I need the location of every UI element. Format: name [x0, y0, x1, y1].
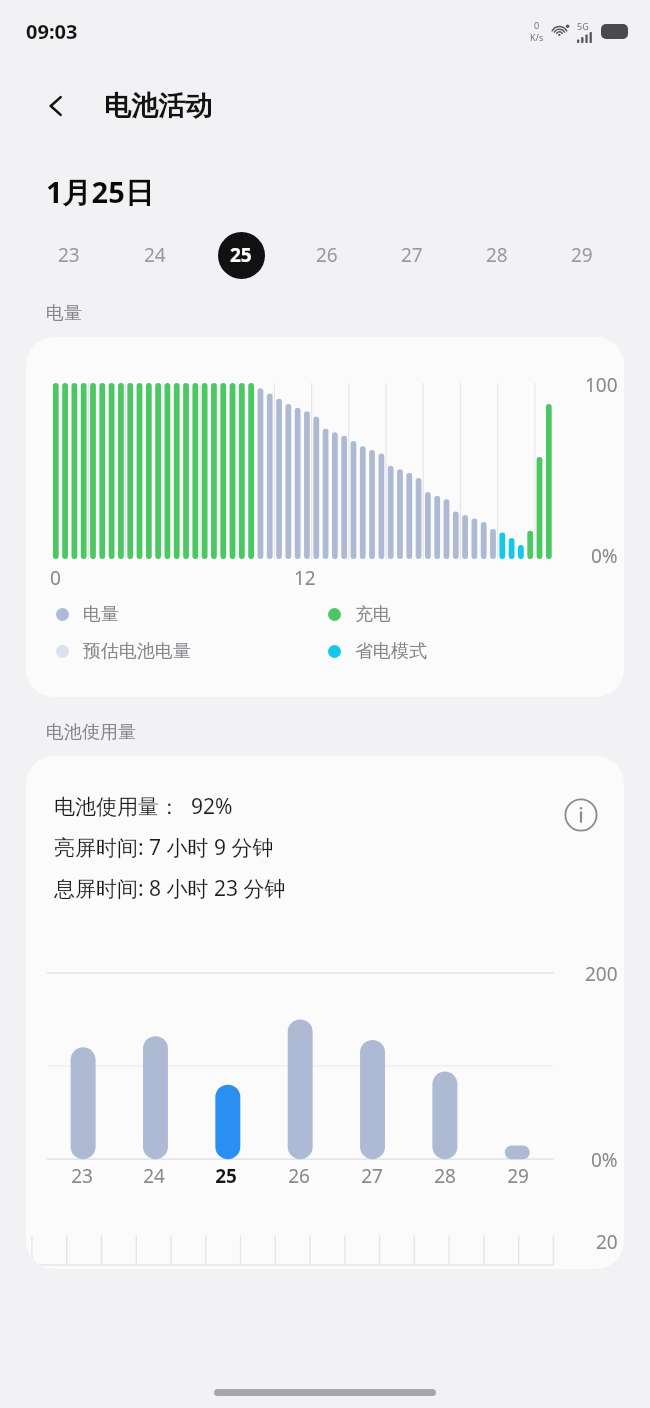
button[interactable]: 电量	[56, 603, 328, 626]
button[interactable]: 25	[198, 228, 284, 282]
button[interactable]: 24	[112, 228, 198, 282]
button[interactable]: 27	[369, 228, 454, 282]
button[interactable]: 充电	[328, 603, 600, 626]
staticText: 24	[144, 242, 166, 268]
staticText: 电池使用量	[46, 721, 136, 744]
button[interactable]: 23	[26, 228, 112, 282]
staticText: 亮屏时间: 7 小时 9 分钟	[54, 833, 274, 862]
staticText: 0	[534, 19, 540, 31]
staticText: 息屏时间: 8 小时 23 分钟	[54, 874, 286, 903]
staticText: 24	[143, 1163, 165, 1189]
staticText: 26	[316, 242, 338, 268]
staticText: 29	[507, 1163, 529, 1189]
staticText: 28	[434, 1163, 456, 1189]
staticText: 0%	[591, 1147, 618, 1173]
button[interactable]: 28	[454, 228, 539, 282]
staticText: 电量	[83, 603, 119, 626]
staticText: 28	[486, 242, 508, 268]
staticText: 09:03	[26, 18, 78, 45]
staticText: 预估电池电量	[83, 640, 191, 663]
button[interactable]: 预估电池电量	[56, 640, 328, 663]
staticText: 26	[288, 1163, 310, 1189]
button[interactable]: 100	[26, 337, 624, 697]
staticText: 20	[596, 1229, 618, 1255]
staticText: 29	[571, 242, 593, 268]
staticText: 0%	[591, 543, 618, 569]
staticText: K/s	[530, 31, 544, 43]
staticText: 23	[71, 1163, 93, 1189]
staticText: 电池活动	[104, 89, 212, 123]
button[interactable]: 26	[284, 228, 369, 282]
button[interactable]: Info	[558, 792, 604, 838]
staticText: 5G	[577, 20, 589, 32]
button[interactable]: Back	[34, 84, 78, 128]
staticText: 27	[361, 1163, 383, 1189]
staticText: 1月25日	[46, 172, 154, 212]
button[interactable]: 省电模式	[328, 640, 600, 663]
staticText: 电量	[46, 302, 82, 325]
staticText: 25	[230, 242, 252, 268]
staticText: 200	[585, 961, 618, 987]
staticText: 12	[294, 565, 316, 591]
staticText: 27	[401, 242, 423, 268]
button[interactable]: 29	[539, 228, 624, 282]
staticText: 23	[58, 242, 80, 268]
staticText: 省电模式	[355, 640, 427, 663]
staticText: 充电	[355, 603, 391, 626]
staticText: 25	[215, 1163, 237, 1189]
staticText: 100	[585, 372, 618, 398]
staticText: 0	[50, 565, 61, 591]
staticText: 电池使用量： 92%	[54, 792, 233, 821]
